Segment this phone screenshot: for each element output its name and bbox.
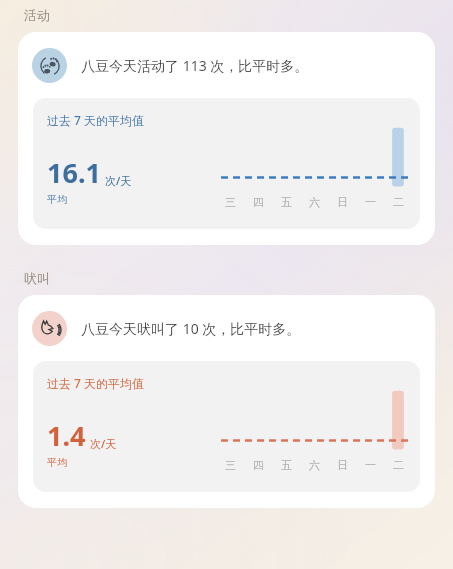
staticText: 三: [225, 195, 236, 209]
staticText: 一: [365, 195, 376, 209]
staticText: 日: [337, 195, 348, 209]
staticText: 吠叫: [24, 270, 50, 286]
staticText: 二: [393, 458, 404, 472]
staticText: 八豆今天吠叫了 10 次，比平时多。: [81, 319, 301, 338]
staticText: 16.1: [47, 154, 101, 191]
staticText: 日: [337, 458, 348, 472]
staticText: 四: [253, 195, 264, 209]
staticText: 活动: [24, 7, 50, 23]
staticText: 五: [281, 458, 292, 472]
staticText: 过去 7 天的平均值: [47, 112, 145, 128]
button[interactable]: Barking: [18, 295, 435, 508]
staticText: 过去 7 天的平均值: [47, 375, 145, 391]
button[interactable]: Activity: [18, 32, 435, 245]
staticText: 平均: [47, 456, 67, 469]
staticText: 四: [253, 458, 264, 472]
staticText: 一: [365, 458, 376, 472]
staticText: 六: [309, 195, 320, 209]
staticText: 平均: [47, 193, 67, 206]
staticText: 五: [281, 195, 292, 209]
staticText: 二: [393, 195, 404, 209]
other: Activity: [32, 48, 67, 83]
staticText: 三: [225, 458, 236, 472]
other: Barking: [32, 311, 67, 346]
staticText: 次/天: [90, 436, 117, 451]
staticText: 次/天: [105, 173, 132, 188]
staticText: 八豆今天活动了 113 次，比平时多。: [81, 56, 309, 75]
staticText: 六: [309, 458, 320, 472]
staticText: 1.4: [47, 417, 86, 454]
